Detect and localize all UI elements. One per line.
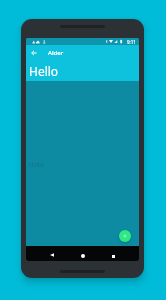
button[interactable]: Add note	[119, 230, 131, 242]
button[interactable]: Recent apps	[106, 249, 120, 261]
staticText: Note	[28, 160, 45, 170]
button[interactable]: Back	[45, 248, 59, 261]
staticText: Alder	[48, 49, 64, 57]
button[interactable]: Back	[26, 45, 41, 60]
staticText: Hello	[29, 63, 59, 79]
staticText: 9:11	[127, 39, 136, 45]
button[interactable]: Home	[76, 249, 90, 261]
